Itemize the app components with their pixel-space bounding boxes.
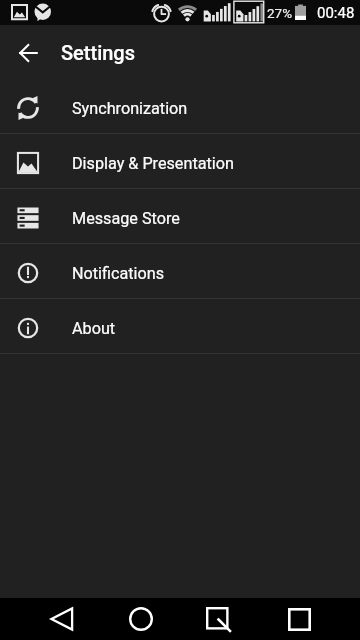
staticText: Message Store xyxy=(72,209,180,228)
button[interactable]: Home xyxy=(117,598,165,640)
button[interactable]: Notifications xyxy=(0,244,360,299)
staticText: Settings xyxy=(61,41,136,64)
button[interactable]: Message Store xyxy=(0,189,360,244)
button[interactable]: Synchronization xyxy=(0,79,360,134)
staticText: Display & Presentation xyxy=(72,154,234,173)
button[interactable]: Recent apps xyxy=(275,598,323,640)
staticText: 00:48 xyxy=(317,4,355,22)
button[interactable]: Display & Presentation xyxy=(0,134,360,189)
button[interactable]: Back xyxy=(38,598,86,640)
staticText: About xyxy=(72,319,116,338)
staticText: Synchronization xyxy=(72,99,188,118)
staticText: 27% xyxy=(267,5,293,21)
button[interactable]: About xyxy=(0,299,360,354)
button[interactable]: Screenshot xyxy=(194,598,242,640)
staticText: Notifications xyxy=(72,264,165,283)
button[interactable]: Navigate up xyxy=(8,32,48,72)
